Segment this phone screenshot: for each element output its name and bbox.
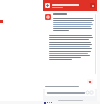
button[interactable]: Send attachment [87, 79, 93, 84]
button[interactable]: Close chat [43, 0, 97, 11]
button[interactable]: Close chat [90, 3, 95, 8]
button[interactable]: Attach file [90, 91, 93, 94]
button[interactable]: Insert emoji [45, 89, 95, 96]
button[interactable]: Insert emoji [86, 91, 89, 94]
